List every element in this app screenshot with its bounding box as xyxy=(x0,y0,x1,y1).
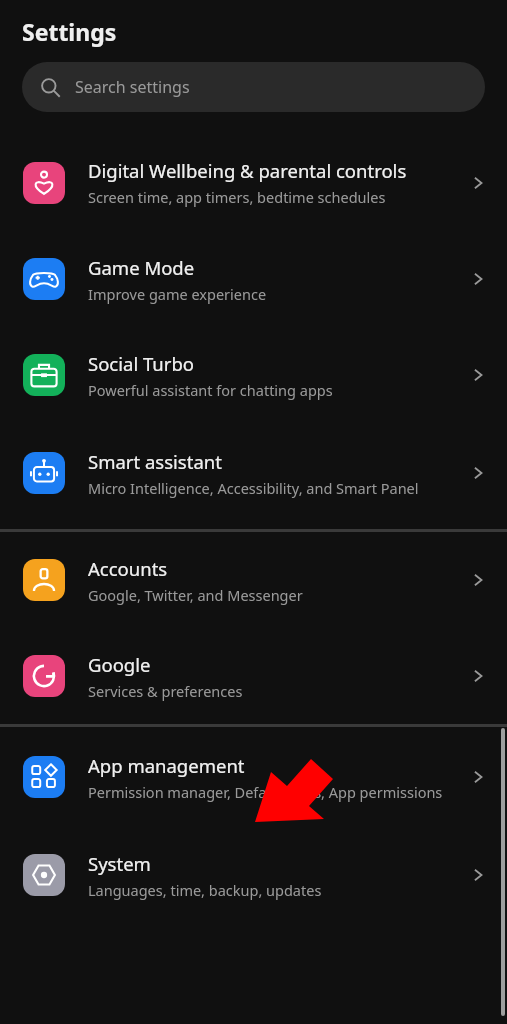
button[interactable]: Game Mode xyxy=(0,231,507,327)
staticText: Improve game experience xyxy=(88,284,267,304)
staticText: Google, Twitter, and Messenger xyxy=(88,585,303,605)
button[interactable]: Search settings xyxy=(22,62,485,112)
staticText: Social Turbo xyxy=(88,351,194,376)
staticText: Google xyxy=(88,652,151,677)
button[interactable]: Digital Wellbeing & parental controls xyxy=(0,134,507,231)
staticText: Digital Wellbeing & parental controls xyxy=(88,158,407,183)
button[interactable]: System xyxy=(0,827,507,923)
button[interactable]: Smart assistant xyxy=(0,423,507,523)
staticText: Micro Intelligence, Accessibility, and S… xyxy=(88,478,419,498)
staticText: Settings xyxy=(22,16,117,47)
staticText: Permission manager, Default apps, App pe… xyxy=(88,782,443,802)
staticText: Smart assistant xyxy=(88,449,222,474)
button[interactable]: Google xyxy=(0,628,507,724)
staticText: Screen time, app timers, bedtime schedul… xyxy=(88,187,386,207)
staticText: App management xyxy=(88,753,245,778)
staticText: Game Mode xyxy=(88,255,195,280)
button[interactable]: App management xyxy=(0,727,507,827)
staticText: Languages, time, backup, updates xyxy=(88,880,322,900)
staticText: Services & preferences xyxy=(88,681,243,701)
staticText: Search settings xyxy=(75,76,190,98)
staticText: Accounts xyxy=(88,556,168,581)
staticText: Powerful assistant for chatting apps xyxy=(88,380,333,400)
staticText: System xyxy=(88,851,151,876)
button[interactable]: Social Turbo xyxy=(0,327,507,423)
button[interactable]: Accounts xyxy=(0,532,507,628)
